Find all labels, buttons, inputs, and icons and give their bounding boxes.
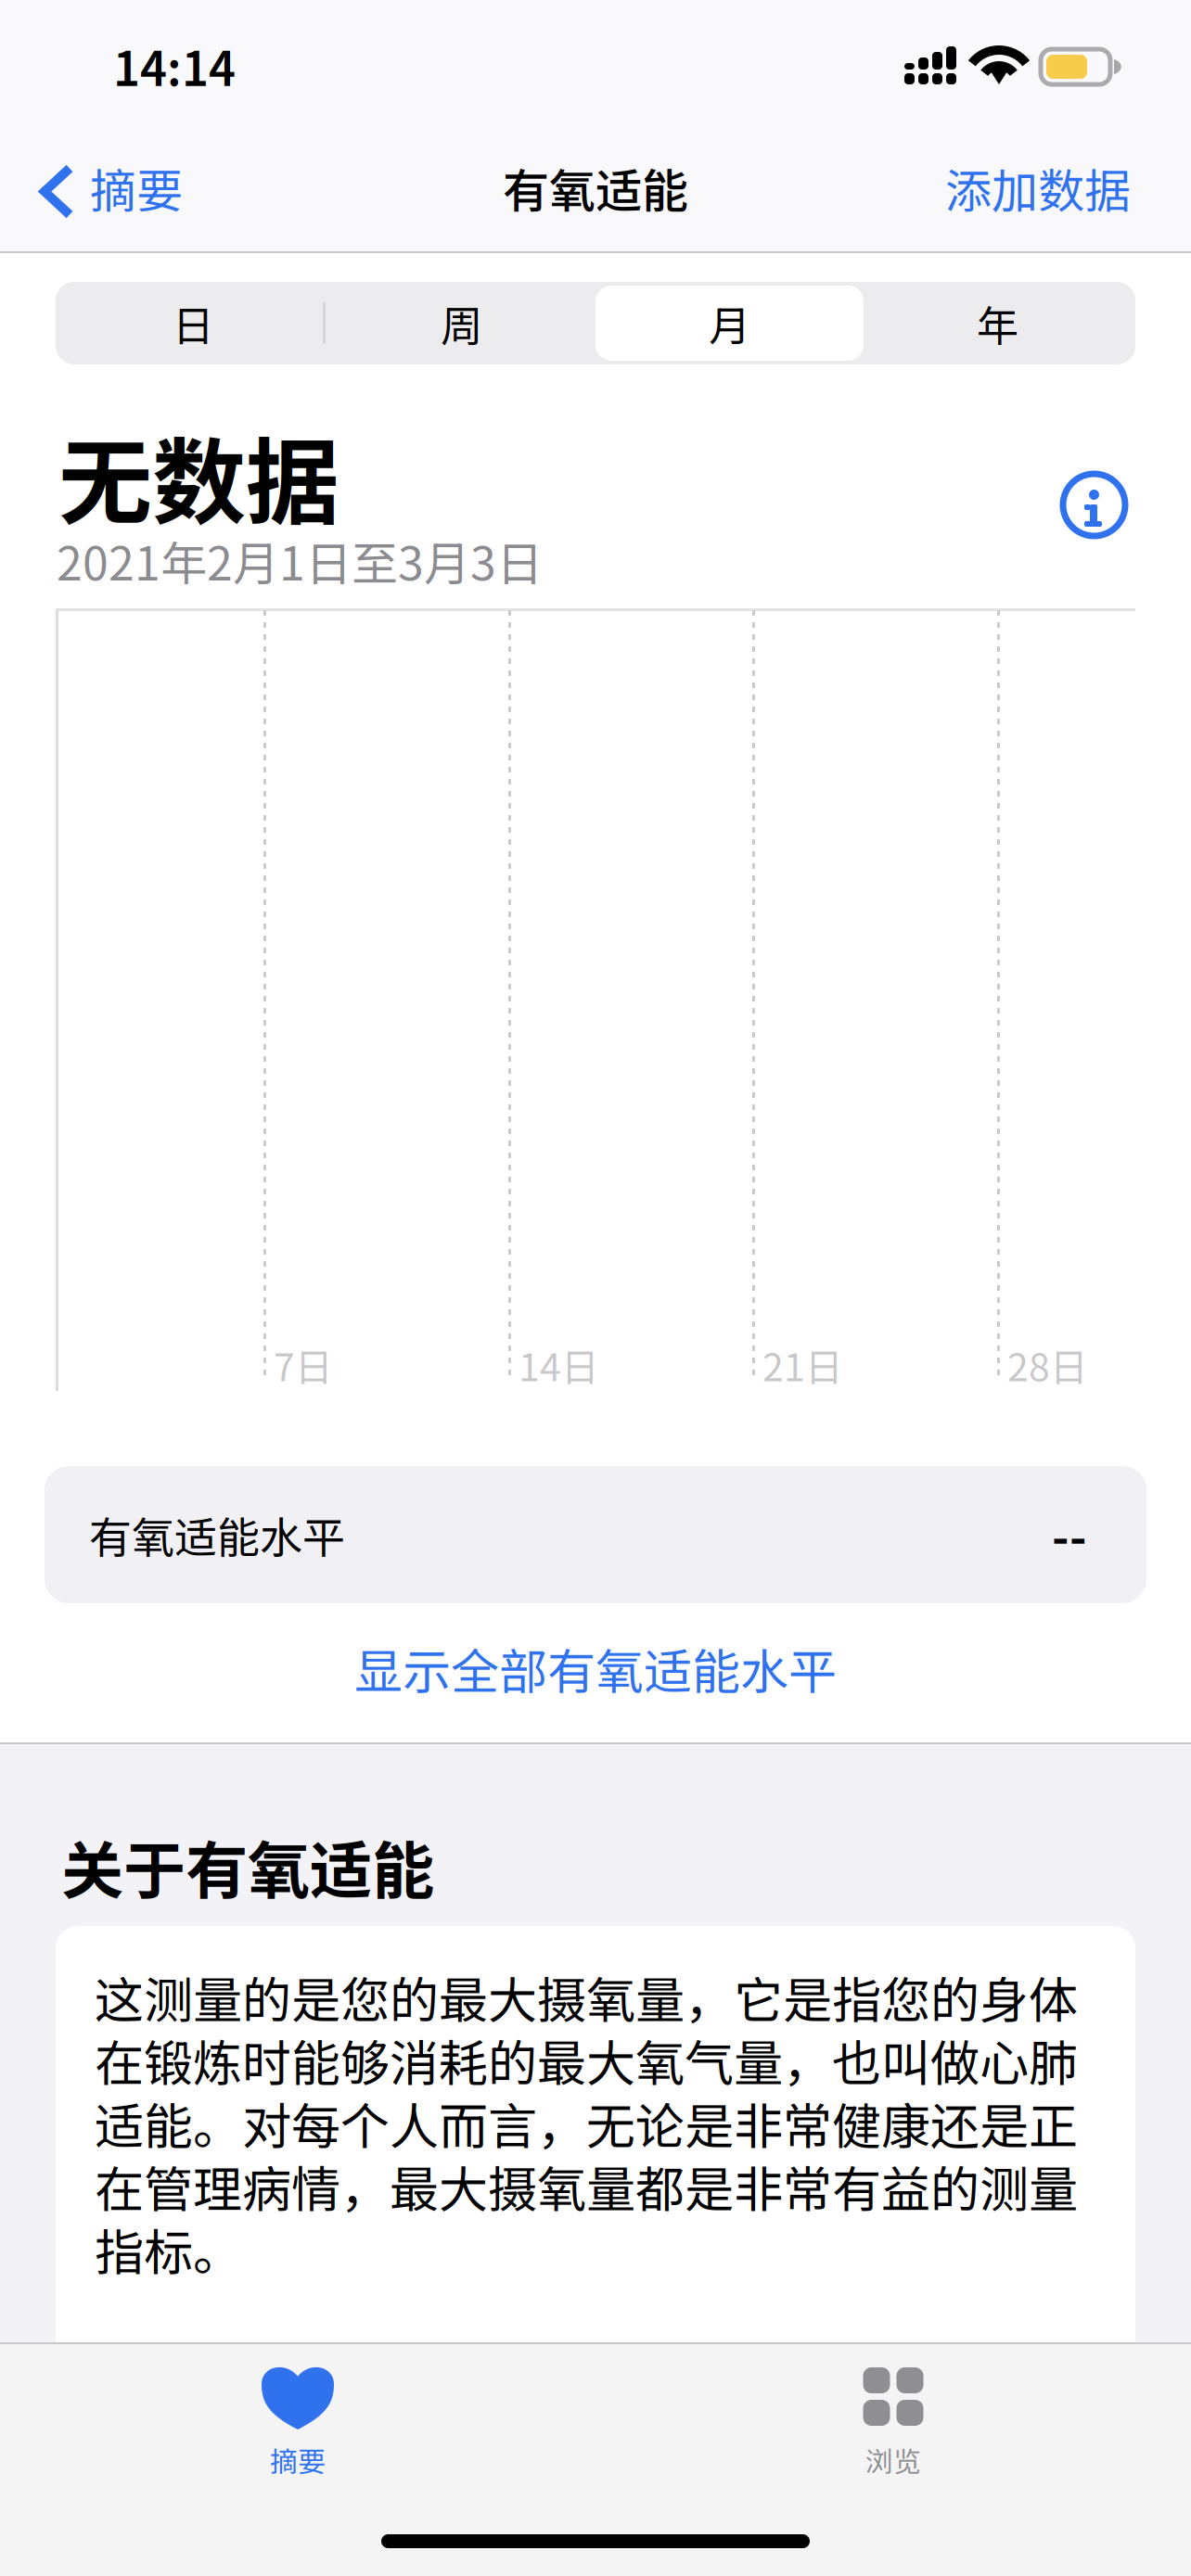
staticText: 2021年2月1日至3月3日 [57, 527, 543, 594]
staticText: 无数据 [58, 408, 339, 543]
staticText: 在管理病情，最大摄氧量都是非常有益的测量 [95, 2150, 1078, 2221]
staticText: 这测量的是您的最大摄氧量，它是指您的身体 [95, 1961, 1078, 2032]
button[interactable]: 信息 [1059, 470, 1128, 539]
staticText: 28日 [1007, 1337, 1088, 1392]
staticText: 日 [173, 293, 214, 353]
button[interactable]: 显示全部有氧适能水平 [0, 1599, 1191, 1738]
button[interactable]: 有氧适能水平 [45, 1466, 1146, 1603]
button[interactable]: 摘要 [0, 2365, 595, 2485]
staticText: 有氧适能 [503, 154, 688, 221]
staticText: 7日 [274, 1337, 333, 1392]
staticText: 浏览 [865, 2440, 921, 2480]
button[interactable]: 添加数据 [904, 122, 1191, 253]
staticText: 摘要 [90, 154, 183, 221]
button[interactable]: 摘要 [0, 122, 207, 253]
staticText: -- [1052, 1501, 1087, 1568]
staticText: 指标。 [95, 2213, 242, 2285]
staticText: 您的有氧适能水平可以显示您的心脏和肺部 [95, 2340, 1029, 2412]
button[interactable]: 年 [864, 286, 1132, 361]
button[interactable]: 月 [595, 286, 864, 361]
button[interactable]: 浏览 [595, 2365, 1191, 2485]
staticText: 有氧适能水平 [89, 1504, 345, 1566]
staticText: 摘要 [270, 2440, 326, 2480]
staticText: 添加数据 [945, 154, 1131, 221]
button[interactable]: 周 [327, 286, 595, 361]
staticText: 年 [977, 293, 1018, 353]
staticText: 在锻炼时能够消耗的最大氧气量，也叫做心肺 [95, 2024, 1078, 2095]
staticText: 显示全部有氧适能水平 [354, 1633, 837, 1703]
staticText: 21日 [762, 1337, 843, 1392]
staticText: 月 [709, 293, 750, 353]
button[interactable]: 日 [59, 286, 327, 361]
staticText: 适能。对每个人而言，无论是非常健康还是正 [95, 2087, 1078, 2158]
staticText: 14日 [519, 1337, 599, 1392]
staticText: 周 [441, 293, 482, 353]
staticText: 关于有氧适能 [61, 1821, 434, 1911]
staticText: 14:14 [113, 32, 236, 99]
